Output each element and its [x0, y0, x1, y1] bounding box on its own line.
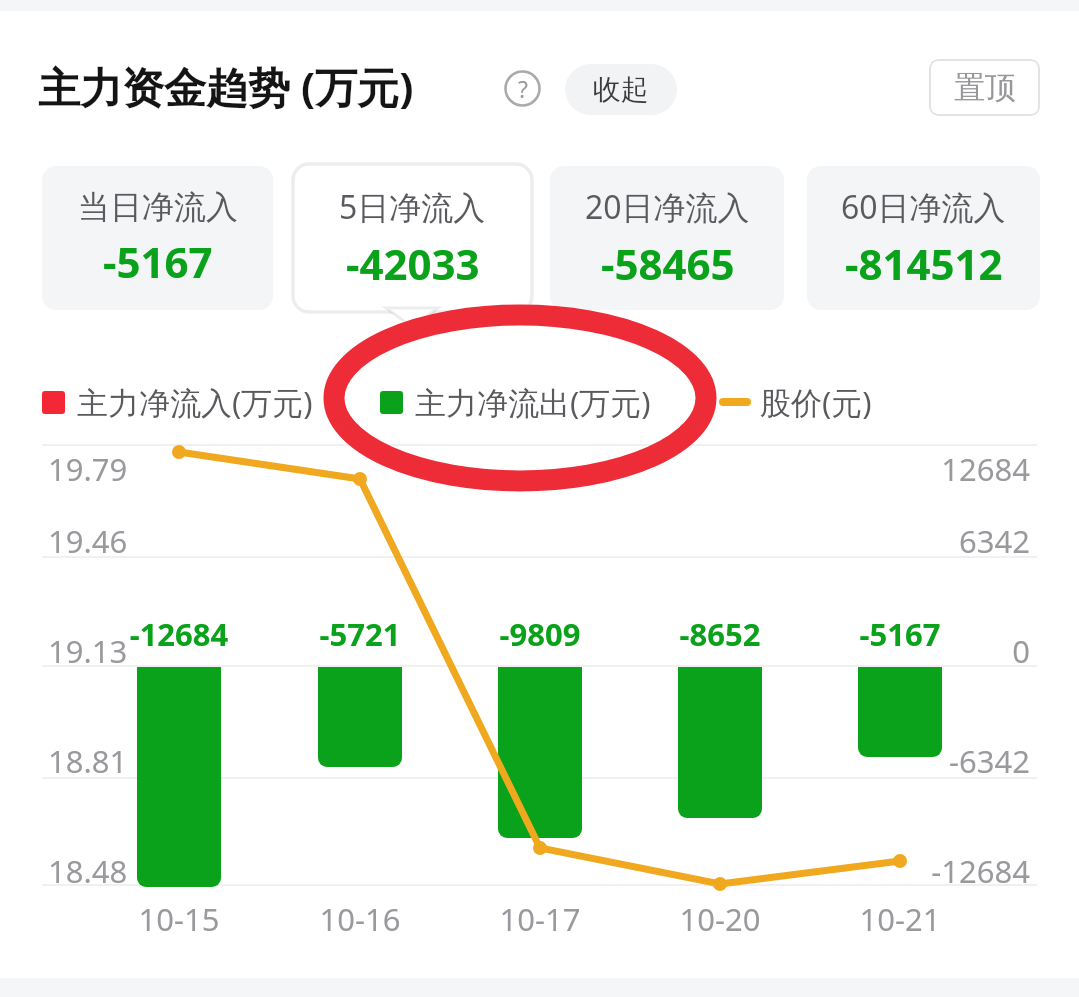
button[interactable]: Help	[504, 70, 541, 107]
staticText: -12684	[104, 613, 254, 655]
staticText: 0	[880, 630, 1030, 672]
staticText: 12684	[880, 448, 1030, 490]
staticText: 收起	[593, 72, 649, 107]
button[interactable]: 股价(元)	[722, 381, 872, 423]
staticText: 10-20	[645, 898, 795, 940]
staticText: 19.46	[48, 520, 128, 562]
staticText: 60日净流入	[841, 185, 1006, 229]
button[interactable]: 主力净流出(万元)	[380, 381, 651, 423]
staticText: -6342	[880, 740, 1030, 782]
staticText: -5721	[285, 613, 435, 655]
button[interactable]: 置顶	[929, 59, 1040, 116]
staticText: -58465	[601, 235, 735, 292]
staticText: 19.79	[48, 448, 128, 490]
staticText: 10-21	[825, 898, 975, 940]
staticText: -12684	[880, 850, 1030, 892]
button[interactable]: 主力净流入(万元)	[42, 381, 313, 423]
staticText: 10-17	[465, 898, 615, 940]
button[interactable]: 当日净流入	[42, 166, 273, 310]
staticText: -5167	[103, 233, 213, 290]
staticText: 10-16	[285, 898, 435, 940]
staticText: ?	[518, 73, 528, 104]
staticText: -9809	[465, 613, 615, 655]
staticText: 6342	[880, 520, 1030, 562]
staticText: 主力资金趋势 (万元)	[38, 58, 414, 115]
staticText: 18.48	[48, 850, 128, 892]
staticText: 10-15	[104, 898, 254, 940]
button[interactable]: 60日净流入	[807, 166, 1040, 310]
staticText: -42033	[346, 235, 480, 292]
button[interactable]: 收起	[565, 64, 677, 115]
staticText: 主力净流出(万元)	[415, 381, 651, 423]
staticText: -814512	[845, 235, 1003, 292]
button[interactable]: 5日净流入	[295, 166, 530, 310]
staticText: 当日净流入	[78, 187, 238, 227]
staticText: 股价(元)	[760, 381, 872, 423]
button[interactable]: 20日净流入	[550, 166, 784, 310]
staticText: 主力净流入(万元)	[77, 381, 313, 423]
staticText: 20日净流入	[585, 185, 750, 229]
staticText: 置顶	[954, 68, 1016, 107]
staticText: 5日净流入	[339, 185, 486, 229]
staticText: 19.13	[48, 630, 128, 672]
staticText: 18.81	[48, 740, 128, 782]
staticText: -5167	[825, 613, 975, 655]
staticText: -8652	[645, 613, 795, 655]
